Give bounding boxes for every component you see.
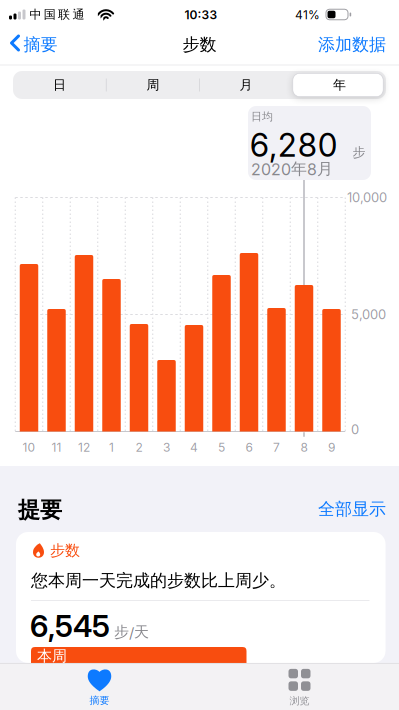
staticText: 7 bbox=[273, 440, 280, 455]
staticText: 11 bbox=[51, 440, 61, 455]
staticText: 周 bbox=[146, 77, 159, 93]
staticText: 8 bbox=[300, 440, 307, 455]
staticText: 0 bbox=[351, 422, 359, 437]
staticText: 全部显示 bbox=[318, 499, 386, 519]
staticText: 2020年8月 bbox=[251, 159, 333, 179]
staticText: 步 bbox=[352, 144, 365, 160]
button[interactable]: 月 bbox=[200, 71, 292, 99]
button[interactable]: 年 bbox=[293, 71, 385, 99]
staticText: 月 bbox=[240, 77, 253, 93]
button[interactable]: 摘要 bbox=[88, 669, 111, 707]
staticText: 浏览 bbox=[289, 695, 309, 707]
staticText: 摘要 bbox=[23, 34, 57, 55]
staticText: 您本周一天完成的步数比上周少。 bbox=[31, 570, 286, 591]
staticText: 年 bbox=[333, 77, 346, 93]
staticText: 1 bbox=[109, 440, 114, 455]
staticText: 5,000 bbox=[351, 307, 386, 322]
staticText: 本周 bbox=[37, 647, 67, 665]
staticText: 步数 bbox=[182, 34, 216, 55]
staticText: 2 bbox=[135, 440, 142, 455]
staticText: 10:33 bbox=[184, 8, 217, 22]
staticText: 提要 bbox=[18, 496, 62, 523]
button[interactable]: 周 bbox=[107, 71, 199, 99]
staticText: 添加数据 bbox=[318, 34, 386, 55]
staticText: 日 bbox=[53, 77, 66, 93]
staticText: 摘要 bbox=[89, 694, 109, 707]
button[interactable]: 全部显示 bbox=[0, 0, 399, 710]
staticText: 9 bbox=[328, 440, 335, 455]
staticText: 10,000 bbox=[347, 190, 387, 205]
staticText: 4 bbox=[190, 440, 198, 455]
button[interactable]: 添加数据 bbox=[0, 0, 399, 710]
staticText: 6,545 bbox=[30, 608, 110, 644]
staticText: 步数 bbox=[50, 541, 80, 560]
staticText: 5 bbox=[218, 440, 225, 455]
button[interactable]: 日 bbox=[14, 71, 106, 99]
staticText: 中国联通 bbox=[29, 7, 84, 22]
staticText: 6 bbox=[245, 440, 252, 455]
button[interactable]: 浏览 bbox=[288, 669, 310, 707]
button[interactable]: 摘要 bbox=[10, 29, 90, 59]
staticText: 3 bbox=[163, 440, 170, 455]
staticText: 6,280 bbox=[249, 126, 337, 164]
staticText: 步/天 bbox=[114, 623, 149, 641]
staticText: 41% bbox=[295, 8, 320, 22]
staticText: 10 bbox=[22, 440, 35, 455]
staticText: 日均 bbox=[251, 110, 273, 123]
staticText: 12 bbox=[78, 440, 90, 455]
